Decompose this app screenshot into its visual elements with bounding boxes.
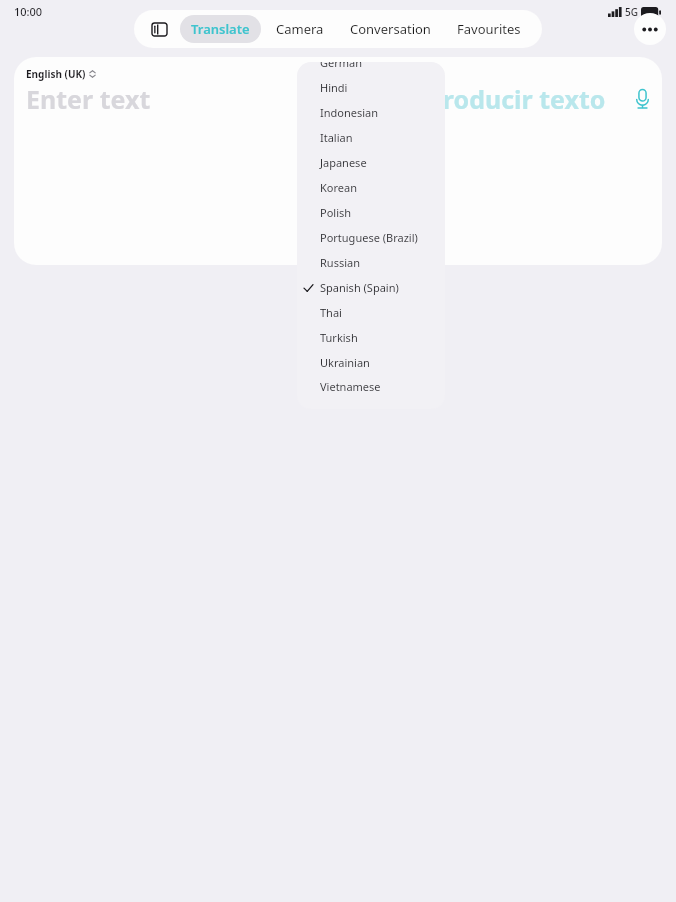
staticText: Italian: [320, 130, 353, 145]
staticText: Indonesian: [320, 105, 379, 120]
button[interactable]: Indonesian: [297, 100, 445, 125]
staticText: Hindi: [320, 80, 348, 95]
staticText: 5G: [625, 5, 638, 19]
button[interactable]: Portuguese (Brazil): [297, 225, 445, 250]
button[interactable]: English (UK): [26, 67, 96, 81]
staticText: Spanish (Spain): [320, 280, 399, 295]
button[interactable]: Sidebar: [144, 15, 174, 43]
button[interactable]: Korean: [297, 175, 445, 200]
staticText: Favourites: [457, 20, 521, 38]
staticText: Turkish: [320, 330, 358, 345]
button[interactable]: Camera: [265, 15, 335, 43]
button[interactable]: Conversation: [339, 15, 442, 43]
staticText: Korean: [320, 180, 357, 195]
button[interactable]: More options: [634, 13, 666, 45]
button[interactable]: Voice input Spanish: [625, 82, 659, 116]
staticText: German: [320, 62, 363, 70]
staticText: Enter text: [26, 82, 151, 116]
button[interactable]: Russian: [297, 250, 445, 275]
button[interactable]: Vietnamese: [297, 375, 445, 397]
button[interactable]: Italian: [297, 125, 445, 150]
button[interactable]: Polish: [297, 200, 445, 225]
button[interactable]: Turkish: [297, 325, 445, 350]
button[interactable]: Hindi: [297, 75, 445, 100]
staticText: Portuguese (Brazil): [320, 230, 418, 245]
button[interactable]: Thai: [297, 300, 445, 325]
button[interactable]: Translate: [180, 15, 261, 43]
staticText: English (UK): [26, 67, 86, 81]
button[interactable]: Ukrainian: [297, 350, 445, 375]
staticText: Vietnamese: [320, 379, 381, 394]
staticText: Conversation: [350, 20, 431, 38]
button[interactable]: Japanese: [297, 150, 445, 175]
staticText: Ukrainian: [320, 355, 370, 370]
button[interactable]: Voice input English: [286, 82, 320, 116]
staticText: Camera: [276, 20, 324, 38]
staticText: Polish: [320, 205, 352, 220]
button[interactable]: Favourites: [446, 15, 532, 43]
staticText: Thai: [320, 305, 342, 320]
staticText: 10:00: [14, 4, 43, 19]
staticText: Introducir texto: [406, 82, 606, 116]
button[interactable]: Spanish (Spain): [297, 275, 445, 300]
button[interactable]: German: [297, 62, 445, 75]
staticText: Russian: [320, 255, 360, 270]
staticText: Translate: [191, 20, 250, 38]
staticText: Japanese: [320, 155, 367, 170]
